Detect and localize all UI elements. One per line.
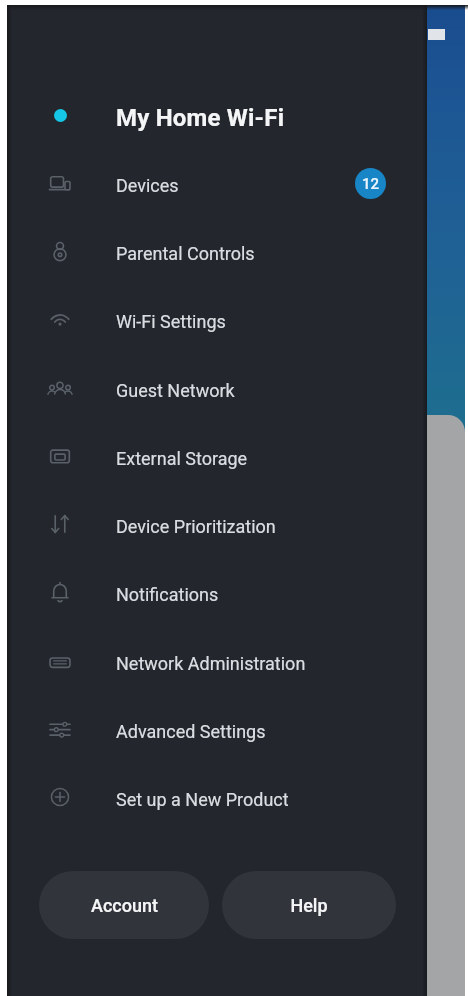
staticText: Notifications (116, 584, 219, 605)
staticText: Device Prioritization (116, 516, 276, 537)
staticText: My Home Wi-Fi (116, 104, 285, 132)
staticText: Network Administration (116, 653, 306, 674)
button[interactable]: Network Administration (7, 627, 427, 695)
staticText: Account (91, 895, 158, 916)
other: Guest Network (47, 375, 73, 401)
staticText: Wi-Fi Settings (116, 311, 226, 332)
other: Notifications (47, 579, 73, 605)
button[interactable]: Guest Network (7, 354, 427, 422)
staticText: Parental Controls (116, 243, 255, 264)
other: Network Administration (47, 648, 73, 674)
other: Set up a New Product (47, 784, 73, 810)
other: Parental Controls (47, 238, 73, 264)
staticText: Advanced Settings (116, 721, 266, 742)
staticText: Devices (116, 175, 179, 196)
button[interactable]: Advanced Settings (7, 695, 427, 763)
button[interactable]: Account (39, 871, 209, 939)
button[interactable]: Help (222, 871, 396, 939)
button[interactable]: Set up a New Product (7, 763, 427, 831)
other: Devices (47, 170, 73, 196)
staticText: Set up a New Product (116, 789, 289, 810)
button[interactable]: Parental Controls (7, 217, 427, 285)
button[interactable]: Devices (7, 149, 427, 217)
button[interactable]: External Storage (7, 422, 427, 490)
button[interactable]: Notifications (7, 558, 427, 626)
staticText: External Storage (116, 448, 248, 469)
button[interactable]: My Home Wi-Fi (7, 81, 427, 149)
other: External Storage (47, 443, 73, 469)
other: Device Prioritization (47, 511, 73, 537)
staticText: Guest Network (116, 380, 235, 401)
staticText: 12 (362, 175, 380, 193)
staticText: Help (290, 895, 328, 916)
button[interactable]: Wi-Fi Settings (7, 285, 427, 353)
other: Wi-Fi Settings (47, 306, 73, 332)
other: Advanced Settings (47, 716, 73, 742)
button[interactable]: Device Prioritization (7, 490, 427, 558)
